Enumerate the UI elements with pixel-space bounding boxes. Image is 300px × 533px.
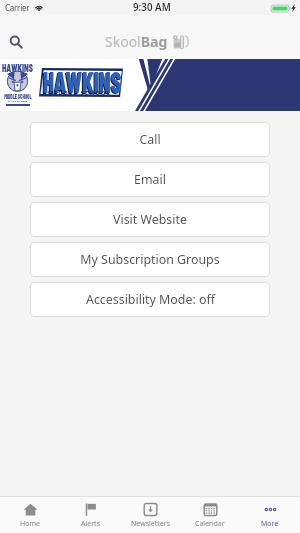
staticText: Email [134,171,166,188]
staticText: SkoolBag [105,32,168,51]
button[interactable]: Newsletters [120,497,180,533]
staticText: Call [139,131,161,148]
button[interactable]: Visit Website [30,202,270,237]
button[interactable]: My Subscription Groups [30,242,270,277]
staticText: Visit Website [113,211,187,228]
button[interactable]: Search [0,22,36,62]
button[interactable]: Accessibility Mode: off [30,282,270,317]
staticText: Carrier [5,2,30,13]
staticText: Newsletters [131,519,170,529]
button[interactable]: Calendar [180,497,240,533]
button[interactable]: Call [30,122,270,157]
staticText: Home [20,519,40,529]
staticText: My Subscription Groups [80,251,220,268]
staticText: CLASS OF 2023 [7,99,27,102]
staticText: HAWKINS [43,63,122,94]
staticText: MIDDLE SCHOOL [48,89,112,95]
staticText: More [261,519,279,529]
button[interactable]: Email [30,162,270,197]
staticText: HAWKINS [42,64,121,95]
staticText: Calendar [195,519,225,529]
staticText: MIDDLE SCHOOL [4,92,32,100]
staticText: Alerts [81,519,100,529]
button[interactable]: Alerts [60,497,120,533]
staticText: HAWKINS [2,62,33,74]
staticText: Accessibility Mode: off [86,291,215,308]
staticText: 9:30 AM [133,1,171,14]
button[interactable]: More [240,497,300,533]
button[interactable]: Home [0,497,60,533]
